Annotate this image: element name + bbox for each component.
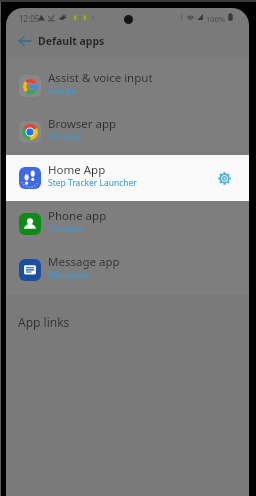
button[interactable]: Message app	[6, 247, 249, 293]
staticText: 12:05	[19, 13, 40, 24]
staticText: Phone app	[48, 208, 107, 224]
staticText: Assist & voice input	[48, 70, 153, 86]
button[interactable]: Home App	[6, 155, 249, 201]
button[interactable]: Assist & voice input	[6, 63, 249, 109]
staticText: Browser app	[48, 116, 117, 132]
button[interactable]: Back	[13, 30, 35, 52]
staticText: Message app	[48, 254, 120, 270]
staticText: Chrome	[48, 131, 80, 143]
button[interactable]: Settings	[215, 169, 233, 187]
button[interactable]: Phone app	[6, 201, 249, 247]
button[interactable]: Browser app	[6, 109, 249, 155]
staticText: Home App	[48, 162, 106, 178]
staticText: Messages	[48, 269, 88, 281]
button[interactable]: App links	[6, 294, 249, 350]
staticText: Google	[48, 85, 77, 97]
staticText: 100%	[206, 14, 226, 24]
staticText: App links	[18, 314, 70, 330]
staticText: Step Tracker Launcher	[48, 177, 137, 189]
staticText: Default apps	[38, 34, 105, 48]
staticText: Contacts	[48, 223, 83, 235]
